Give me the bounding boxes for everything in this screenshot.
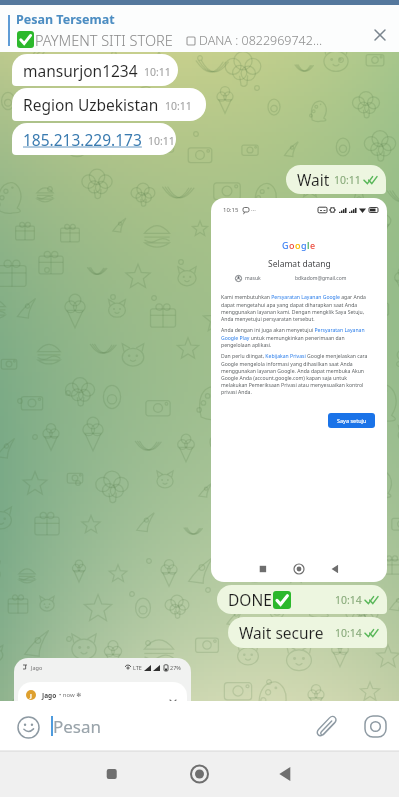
staticText: DONE xyxy=(228,589,272,610)
staticText: l xyxy=(307,239,310,251)
button[interactable]: Attach file xyxy=(311,712,340,741)
button[interactable]: Wait secure xyxy=(228,617,387,648)
staticText: 10:11 xyxy=(165,99,192,113)
button[interactable]: Pesan Tersemat xyxy=(0,5,399,52)
staticText: Jago xyxy=(31,664,43,671)
staticText: Wait xyxy=(297,169,330,190)
staticText: o xyxy=(289,239,295,251)
staticText: LTE xyxy=(133,664,142,671)
staticText: 10:11 xyxy=(148,134,175,148)
button[interactable]: 185.213.229.173 xyxy=(12,123,176,155)
staticText: Jago xyxy=(42,691,57,700)
button[interactable]: Jago xyxy=(14,658,191,701)
staticText: ··· xyxy=(251,206,256,214)
staticText: Pesan Tersemat xyxy=(16,11,115,28)
staticText: Pesan xyxy=(53,715,102,738)
button[interactable]: Close pinned message xyxy=(366,21,393,48)
staticText: 185.213.229.173 xyxy=(23,129,142,150)
staticText: J xyxy=(30,692,32,699)
button[interactable]: Region Uzbekistan xyxy=(12,88,206,121)
staticText: Anda dengan ini juga akan menyetujui Per… xyxy=(221,327,373,348)
staticText: 10:14 xyxy=(335,593,362,607)
button[interactable]: Wait xyxy=(286,165,386,194)
button[interactable]: Camera xyxy=(361,712,389,740)
staticText: mansurjon1234 xyxy=(23,60,138,81)
button[interactable]: 10:15 xyxy=(211,198,387,582)
staticText: 10:15 xyxy=(223,206,239,214)
button[interactable]: mansurjon1234 xyxy=(12,54,178,86)
staticText: 10:11 xyxy=(144,65,171,79)
staticText: g xyxy=(301,239,307,251)
staticText: e xyxy=(310,239,316,251)
staticText: Saya setuju xyxy=(337,417,367,424)
staticText: o xyxy=(295,239,301,251)
staticText: • now ✻ xyxy=(59,691,82,699)
staticText: 27% xyxy=(170,664,181,671)
button[interactable]: Emoji xyxy=(14,713,43,742)
staticText: Kami membutuhkan Persyaratan Layanan Goo… xyxy=(221,294,373,322)
staticText: Wait secure xyxy=(239,622,324,643)
staticText: Dan perlu diingat, Kebijakan Privasi Goo… xyxy=(221,353,373,395)
staticText: 10:14 xyxy=(335,626,362,640)
staticText: Region Uzbekistan xyxy=(23,94,159,115)
staticText: Selamat datang xyxy=(268,258,331,270)
staticText: 10:11 xyxy=(334,173,361,187)
button[interactable]: Saya setuju xyxy=(328,413,375,428)
button[interactable]: DONE xyxy=(217,585,387,614)
staticText: G xyxy=(282,239,289,251)
staticText: masuk xyxy=(245,275,261,282)
staticText: PAYMENT SITI STORE xyxy=(35,30,173,50)
staticText: DANA : 0822969742… xyxy=(199,32,323,49)
staticText: bdkadom@gmail.com xyxy=(295,275,347,282)
